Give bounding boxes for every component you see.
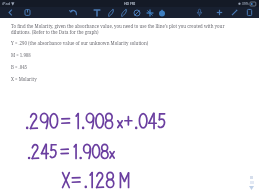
button[interactable]: Text tool: [91, 8, 103, 18]
staticText: To find the Molarity, given the absorban…: [11, 23, 225, 29]
staticText: X = Molarity: [11, 76, 37, 82]
staticText: dilutions. (Refer to the Data for the gr…: [11, 29, 99, 35]
staticText: B = .045: [11, 64, 28, 70]
button[interactable]: Record audio: [194, 7, 205, 18]
button[interactable]: Eraser tool: [131, 8, 143, 18]
button[interactable]: Back: [4, 7, 17, 18]
button[interactable]: Pen tool: [105, 8, 117, 18]
staticText: M = 1.908: [11, 52, 31, 58]
staticText: HD FRI: [124, 1, 136, 6]
button[interactable]: Selection tool: [144, 8, 156, 18]
button[interactable]: Undo: [68, 7, 80, 18]
button[interactable]: Add: [213, 8, 226, 17]
staticText: ✹ 39%: [238, 1, 249, 6]
button[interactable]: Ink color: [156, 8, 168, 18]
staticText: iPad ▼: [2, 1, 15, 6]
button[interactable]: Library: [21, 7, 34, 18]
button[interactable]: Pages: [243, 8, 256, 17]
button[interactable]: Highlighter tool: [118, 8, 130, 18]
button[interactable]: Share: [228, 8, 241, 17]
staticText: Y = .290 (the absorbance value of our un…: [11, 40, 149, 46]
